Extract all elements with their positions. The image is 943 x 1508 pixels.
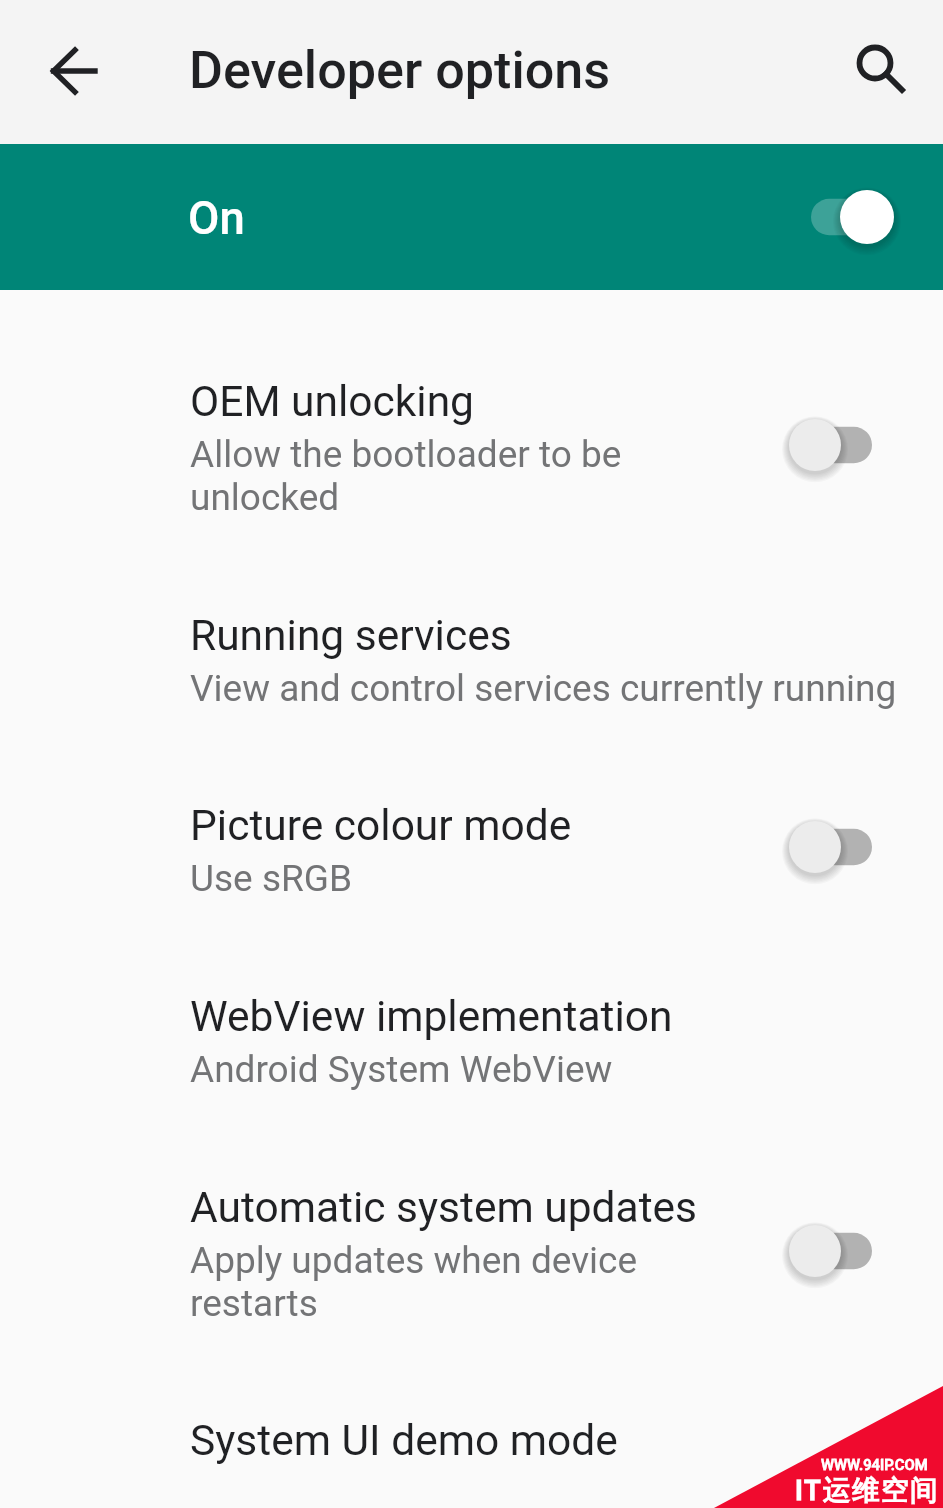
button[interactable]: WebView implementation [0, 992, 943, 1183]
button[interactable]: Navigate up [0, 0, 146, 144]
button[interactable]: Toggle setting [772, 397, 890, 493]
button[interactable]: Search [813, 0, 943, 144]
staticText: On [188, 192, 245, 245]
staticText: Picture colour mode [190, 801, 572, 851]
staticText: Automatic system updates [190, 1183, 698, 1233]
button[interactable]: Automatic system updates [0, 1183, 943, 1416]
staticText: OEM unlocking [190, 377, 474, 427]
button[interactable]: Picture colour mode [0, 801, 943, 992]
button[interactable]: Toggle setting [772, 1203, 890, 1299]
staticText: View and control services currently runn… [190, 667, 943, 710]
button[interactable]: System UI demo mode [0, 1416, 943, 1501]
staticText: Apply updates when device restarts [190, 1239, 750, 1325]
staticText: WebView implementation [190, 992, 673, 1042]
staticText: Running services [190, 611, 512, 661]
staticText: Allow the bootloader to be unlocked [190, 433, 750, 519]
staticText: System UI demo mode [190, 1416, 618, 1466]
button[interactable]: Toggle setting [772, 799, 890, 895]
staticText: Developer options [189, 40, 611, 101]
button[interactable]: Running services [0, 611, 943, 801]
staticText: Android System WebView [190, 1048, 943, 1091]
button[interactable]: OEM unlocking [0, 377, 943, 610]
staticText: WWW.94IP.COM [821, 1456, 928, 1473]
staticText: IT运维空间 [795, 1474, 939, 1508]
staticText: Use sRGB [190, 857, 750, 900]
button[interactable]: Disable developer options [793, 169, 911, 265]
button[interactable]: On [0, 144, 943, 290]
